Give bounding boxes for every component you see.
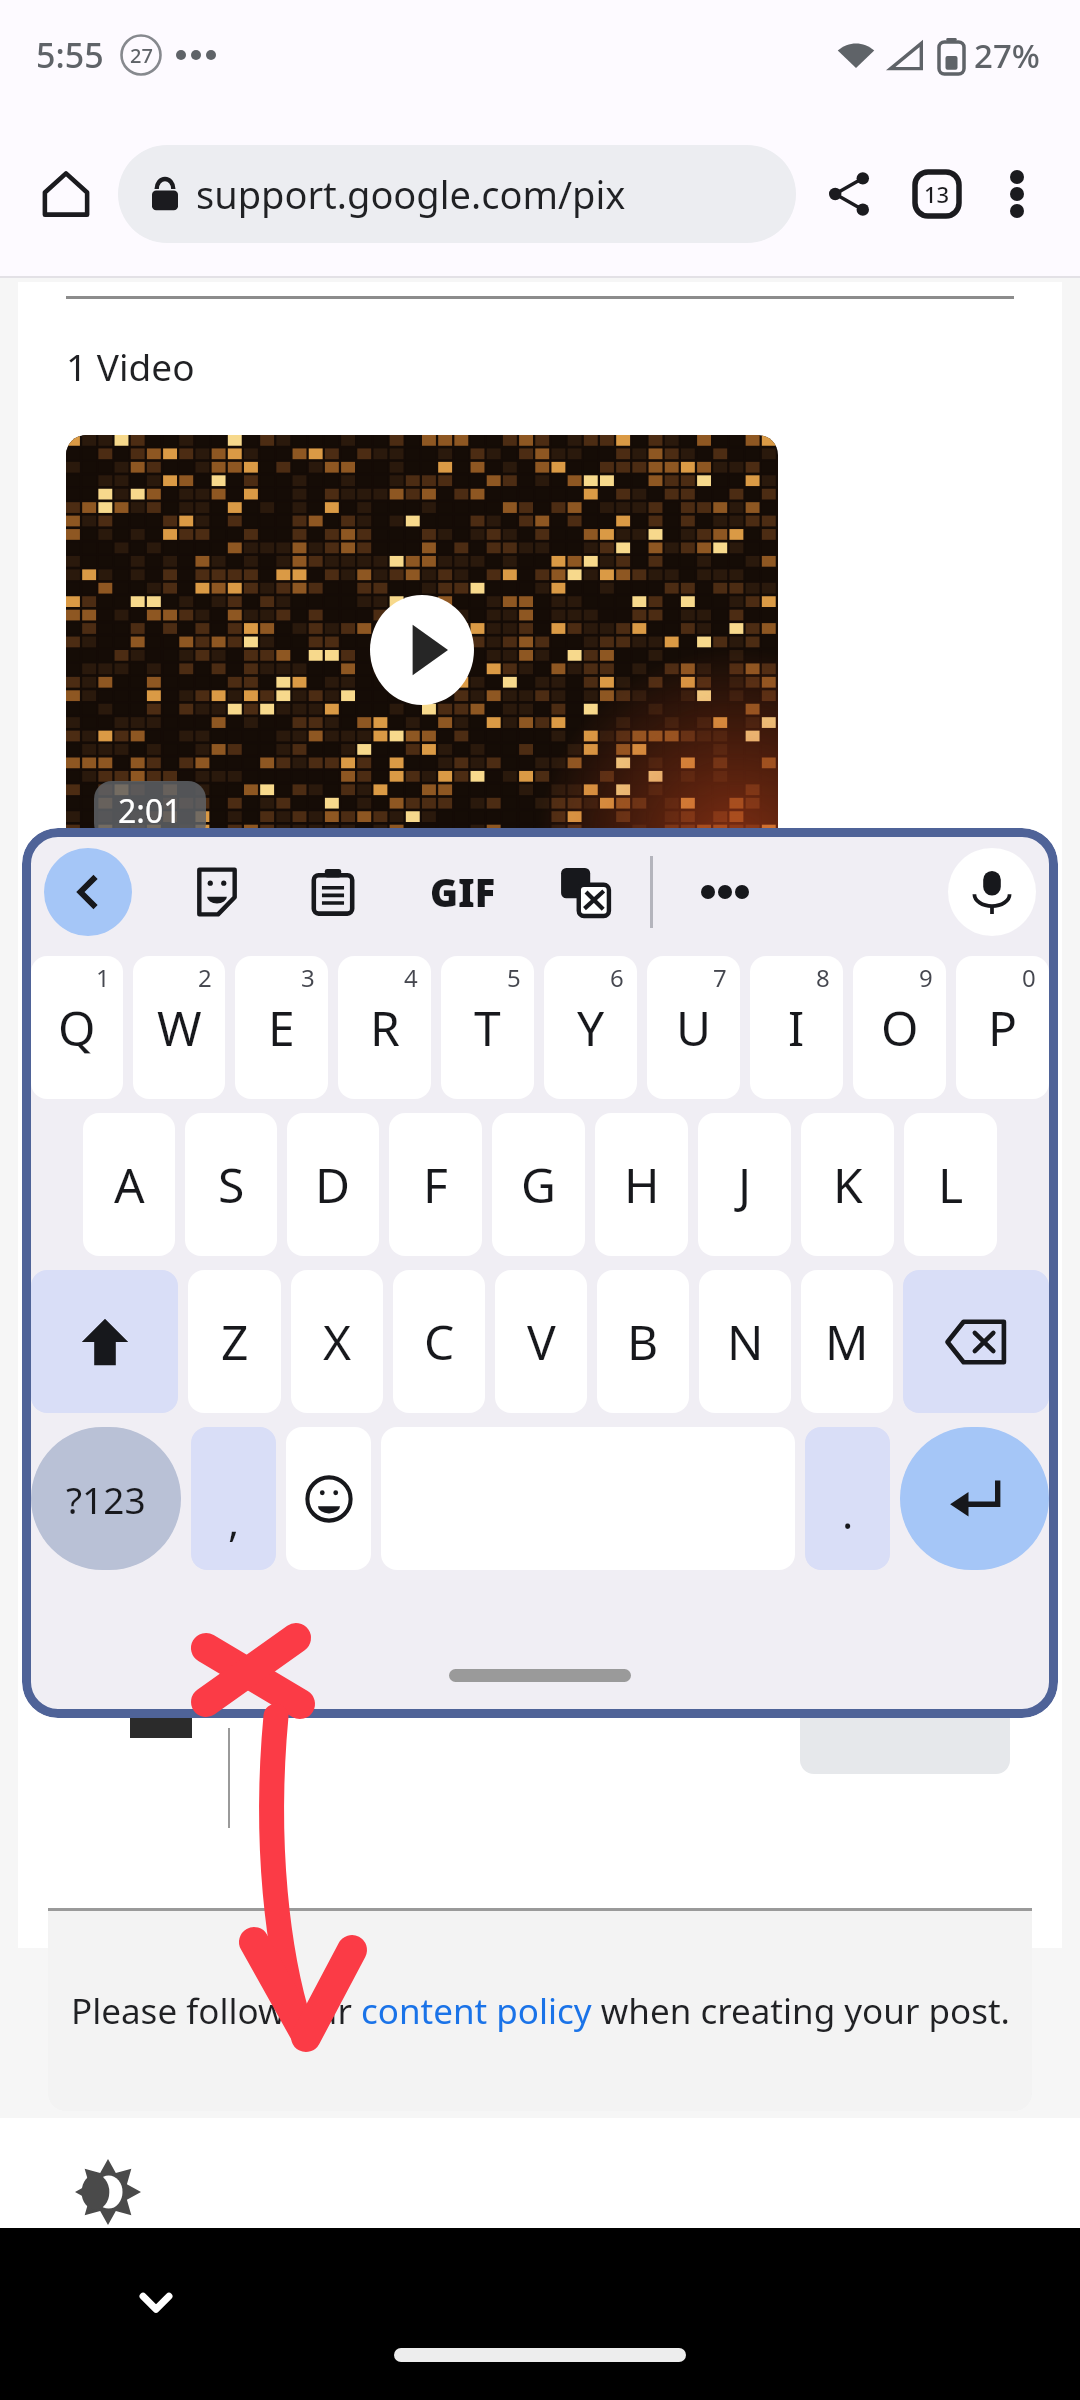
button[interactable]: V (495, 1270, 587, 1413)
staticText: 13 (924, 179, 950, 209)
staticText: Z (221, 1309, 249, 1374)
staticText: ?123 (66, 1474, 146, 1524)
staticText: 4 (404, 961, 418, 994)
button[interactable]: Dark theme (68, 2156, 148, 2228)
staticText: 5 (507, 961, 521, 994)
button[interactable]: G (492, 1113, 585, 1256)
button[interactable]: Stickers (182, 857, 252, 927)
button[interactable]: K (801, 1113, 894, 1256)
button[interactable]: GIF (420, 849, 506, 935)
button[interactable]: R (338, 956, 431, 1099)
button[interactable]: U (647, 956, 740, 1099)
staticText: E (268, 995, 295, 1060)
button[interactable]: . (805, 1427, 890, 1570)
button[interactable]: Y (544, 956, 637, 1099)
button[interactable]: Hide keyboard (138, 2284, 174, 2320)
button[interactable]: I (750, 956, 843, 1099)
staticText: 7 (713, 961, 727, 994)
staticText: Y (577, 995, 605, 1060)
button[interactable]: Z (188, 1270, 281, 1413)
staticText: 3 (301, 961, 315, 994)
button[interactable]: T (441, 956, 534, 1099)
button[interactable]: O (853, 956, 946, 1099)
staticText: A (114, 1152, 145, 1217)
button[interactable]: H (595, 1113, 688, 1256)
staticText: 6 (610, 961, 624, 994)
button[interactable]: support.google.com/pix (118, 145, 796, 243)
button[interactable]: ?123 (31, 1427, 181, 1570)
staticText: 5:55 (36, 32, 104, 78)
staticText: L (938, 1152, 964, 1217)
button[interactable]: A (83, 1113, 175, 1256)
staticText: R (370, 995, 400, 1060)
button[interactable]: J (698, 1113, 791, 1256)
button[interactable]: Play video, 2 minutes 1 second (66, 435, 778, 865)
staticText: Please follow our content policy when cr… (71, 1987, 1010, 2035)
staticText: N (727, 1309, 764, 1374)
staticText: H (624, 1152, 660, 1217)
staticText: support.google.com/pix (196, 168, 626, 220)
button[interactable]: More options (980, 157, 1054, 231)
button[interactable]: Enter (900, 1427, 1049, 1570)
button[interactable]: L (904, 1113, 997, 1256)
button[interactable]: More keyboard options (689, 856, 761, 928)
button[interactable]: Translate (550, 857, 620, 927)
staticText: , (228, 1492, 240, 1549)
button[interactable]: X (291, 1270, 383, 1413)
staticText: B (627, 1309, 659, 1374)
button[interactable]: E (235, 956, 328, 1099)
staticText: U (676, 995, 712, 1060)
button[interactable]: Tabs, 13 open (898, 155, 976, 233)
staticText: 1 (96, 961, 110, 994)
staticText: P (988, 995, 1018, 1060)
staticText: T (474, 995, 501, 1060)
staticText: D (315, 1152, 351, 1217)
staticText: 27 (130, 42, 153, 69)
button[interactable]: P (956, 956, 1049, 1099)
button[interactable]: B (597, 1270, 689, 1413)
button[interactable]: Backspace (903, 1270, 1049, 1413)
staticText: O (881, 995, 919, 1060)
button[interactable]: C (393, 1270, 485, 1413)
button[interactable]: D (287, 1113, 379, 1256)
staticText: 2 (198, 961, 212, 994)
button[interactable]: , (191, 1427, 276, 1570)
staticText: V (527, 1309, 556, 1374)
staticText: F (423, 1152, 448, 1217)
staticText: W (157, 995, 202, 1060)
button[interactable]: F (389, 1113, 482, 1256)
staticText: Q (58, 995, 96, 1060)
button[interactable]: Emoji (286, 1427, 371, 1570)
button[interactable]: Clipboard (298, 857, 368, 927)
staticText: J (738, 1152, 752, 1217)
staticText: 8 (816, 961, 830, 994)
button[interactable]: Share (810, 155, 888, 233)
staticText: G (521, 1152, 556, 1217)
button[interactable]: Home (26, 154, 106, 234)
button[interactable]: S (185, 1113, 277, 1256)
staticText: 1 Video (66, 341, 195, 391)
staticText: 27% (974, 33, 1040, 78)
staticText: 0 (1022, 961, 1036, 994)
button[interactable]: Shift (31, 1270, 178, 1413)
staticText: 9 (919, 961, 933, 994)
staticText: I (788, 995, 805, 1060)
button[interactable]: Voice input (948, 848, 1036, 936)
staticText: M (825, 1309, 869, 1374)
staticText: S (218, 1152, 245, 1217)
staticText: X (323, 1309, 352, 1374)
button[interactable]: M (801, 1270, 893, 1413)
staticText: GIF (430, 866, 496, 918)
staticText: C (424, 1309, 455, 1374)
button[interactable]: Back (44, 848, 132, 936)
button[interactable]: Q (31, 956, 123, 1099)
staticText: . (842, 1484, 854, 1541)
button[interactable]: W (133, 956, 225, 1099)
button[interactable]: N (699, 1270, 791, 1413)
staticText: 2:01 (118, 789, 182, 833)
staticText: K (833, 1152, 863, 1217)
